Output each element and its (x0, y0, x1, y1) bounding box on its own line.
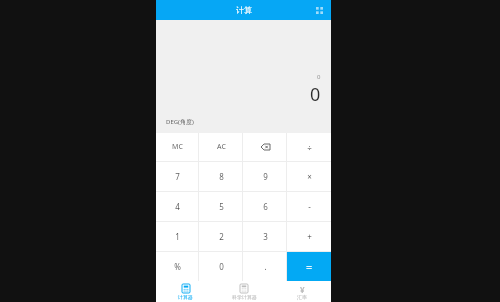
staticText: 1 (175, 231, 180, 242)
staticText: - (308, 201, 311, 212)
staticText: ¥ (300, 284, 305, 293)
staticText: + (307, 231, 312, 242)
staticText: 8 (219, 171, 224, 182)
button[interactable]: ¥ (273, 281, 331, 302)
staticText: 7 (175, 171, 180, 182)
button[interactable]: ÷ (287, 133, 331, 161)
button[interactable]: 2 (199, 222, 243, 251)
staticText: 汇率 (297, 294, 307, 300)
staticText: 计算 (236, 5, 252, 15)
staticText: 3 (263, 231, 268, 242)
staticText: 0 (317, 73, 321, 81)
button[interactable]: 计算器 (156, 281, 215, 302)
staticText: AC (217, 142, 226, 152)
button[interactable]: History (312, 3, 326, 17)
button[interactable]: 3 (243, 222, 287, 251)
staticText: % (174, 261, 181, 272)
button[interactable]: 科学计算器 (215, 281, 273, 302)
staticText: 2 (219, 231, 224, 242)
button[interactable]: . (243, 252, 287, 281)
button[interactable]: 5 (199, 192, 243, 221)
button[interactable]: 1 (156, 222, 199, 251)
button[interactable]: = (287, 252, 331, 281)
staticText: 9 (263, 171, 268, 182)
button[interactable]: 8 (199, 162, 243, 191)
button[interactable]: 4 (156, 192, 199, 221)
staticText: 0 (219, 261, 224, 272)
button[interactable]: DEG(角度) (166, 118, 194, 126)
button[interactable]: × (287, 162, 331, 191)
staticText: × (307, 171, 312, 182)
button[interactable]: 6 (243, 192, 287, 221)
button[interactable]: AC (199, 133, 243, 161)
staticText: 4 (175, 201, 180, 212)
button[interactable]: % (156, 252, 199, 281)
staticText: 计算器 (178, 294, 193, 300)
button[interactable]: MC (156, 133, 199, 161)
button[interactable]: 0 (199, 252, 243, 281)
staticText: MC (172, 142, 183, 152)
staticText: 0 (310, 82, 321, 107)
staticText: . (264, 261, 267, 272)
button[interactable]: + (287, 222, 331, 251)
staticText: 6 (263, 201, 268, 212)
button[interactable]: - (287, 192, 331, 221)
staticText: 5 (219, 201, 224, 212)
staticText: = (306, 259, 313, 274)
button[interactable]: 7 (156, 162, 199, 191)
button[interactable]: Backspace (243, 133, 287, 161)
button[interactable]: 9 (243, 162, 287, 191)
staticText: 科学计算器 (232, 294, 257, 300)
staticText: ÷ (307, 142, 312, 153)
